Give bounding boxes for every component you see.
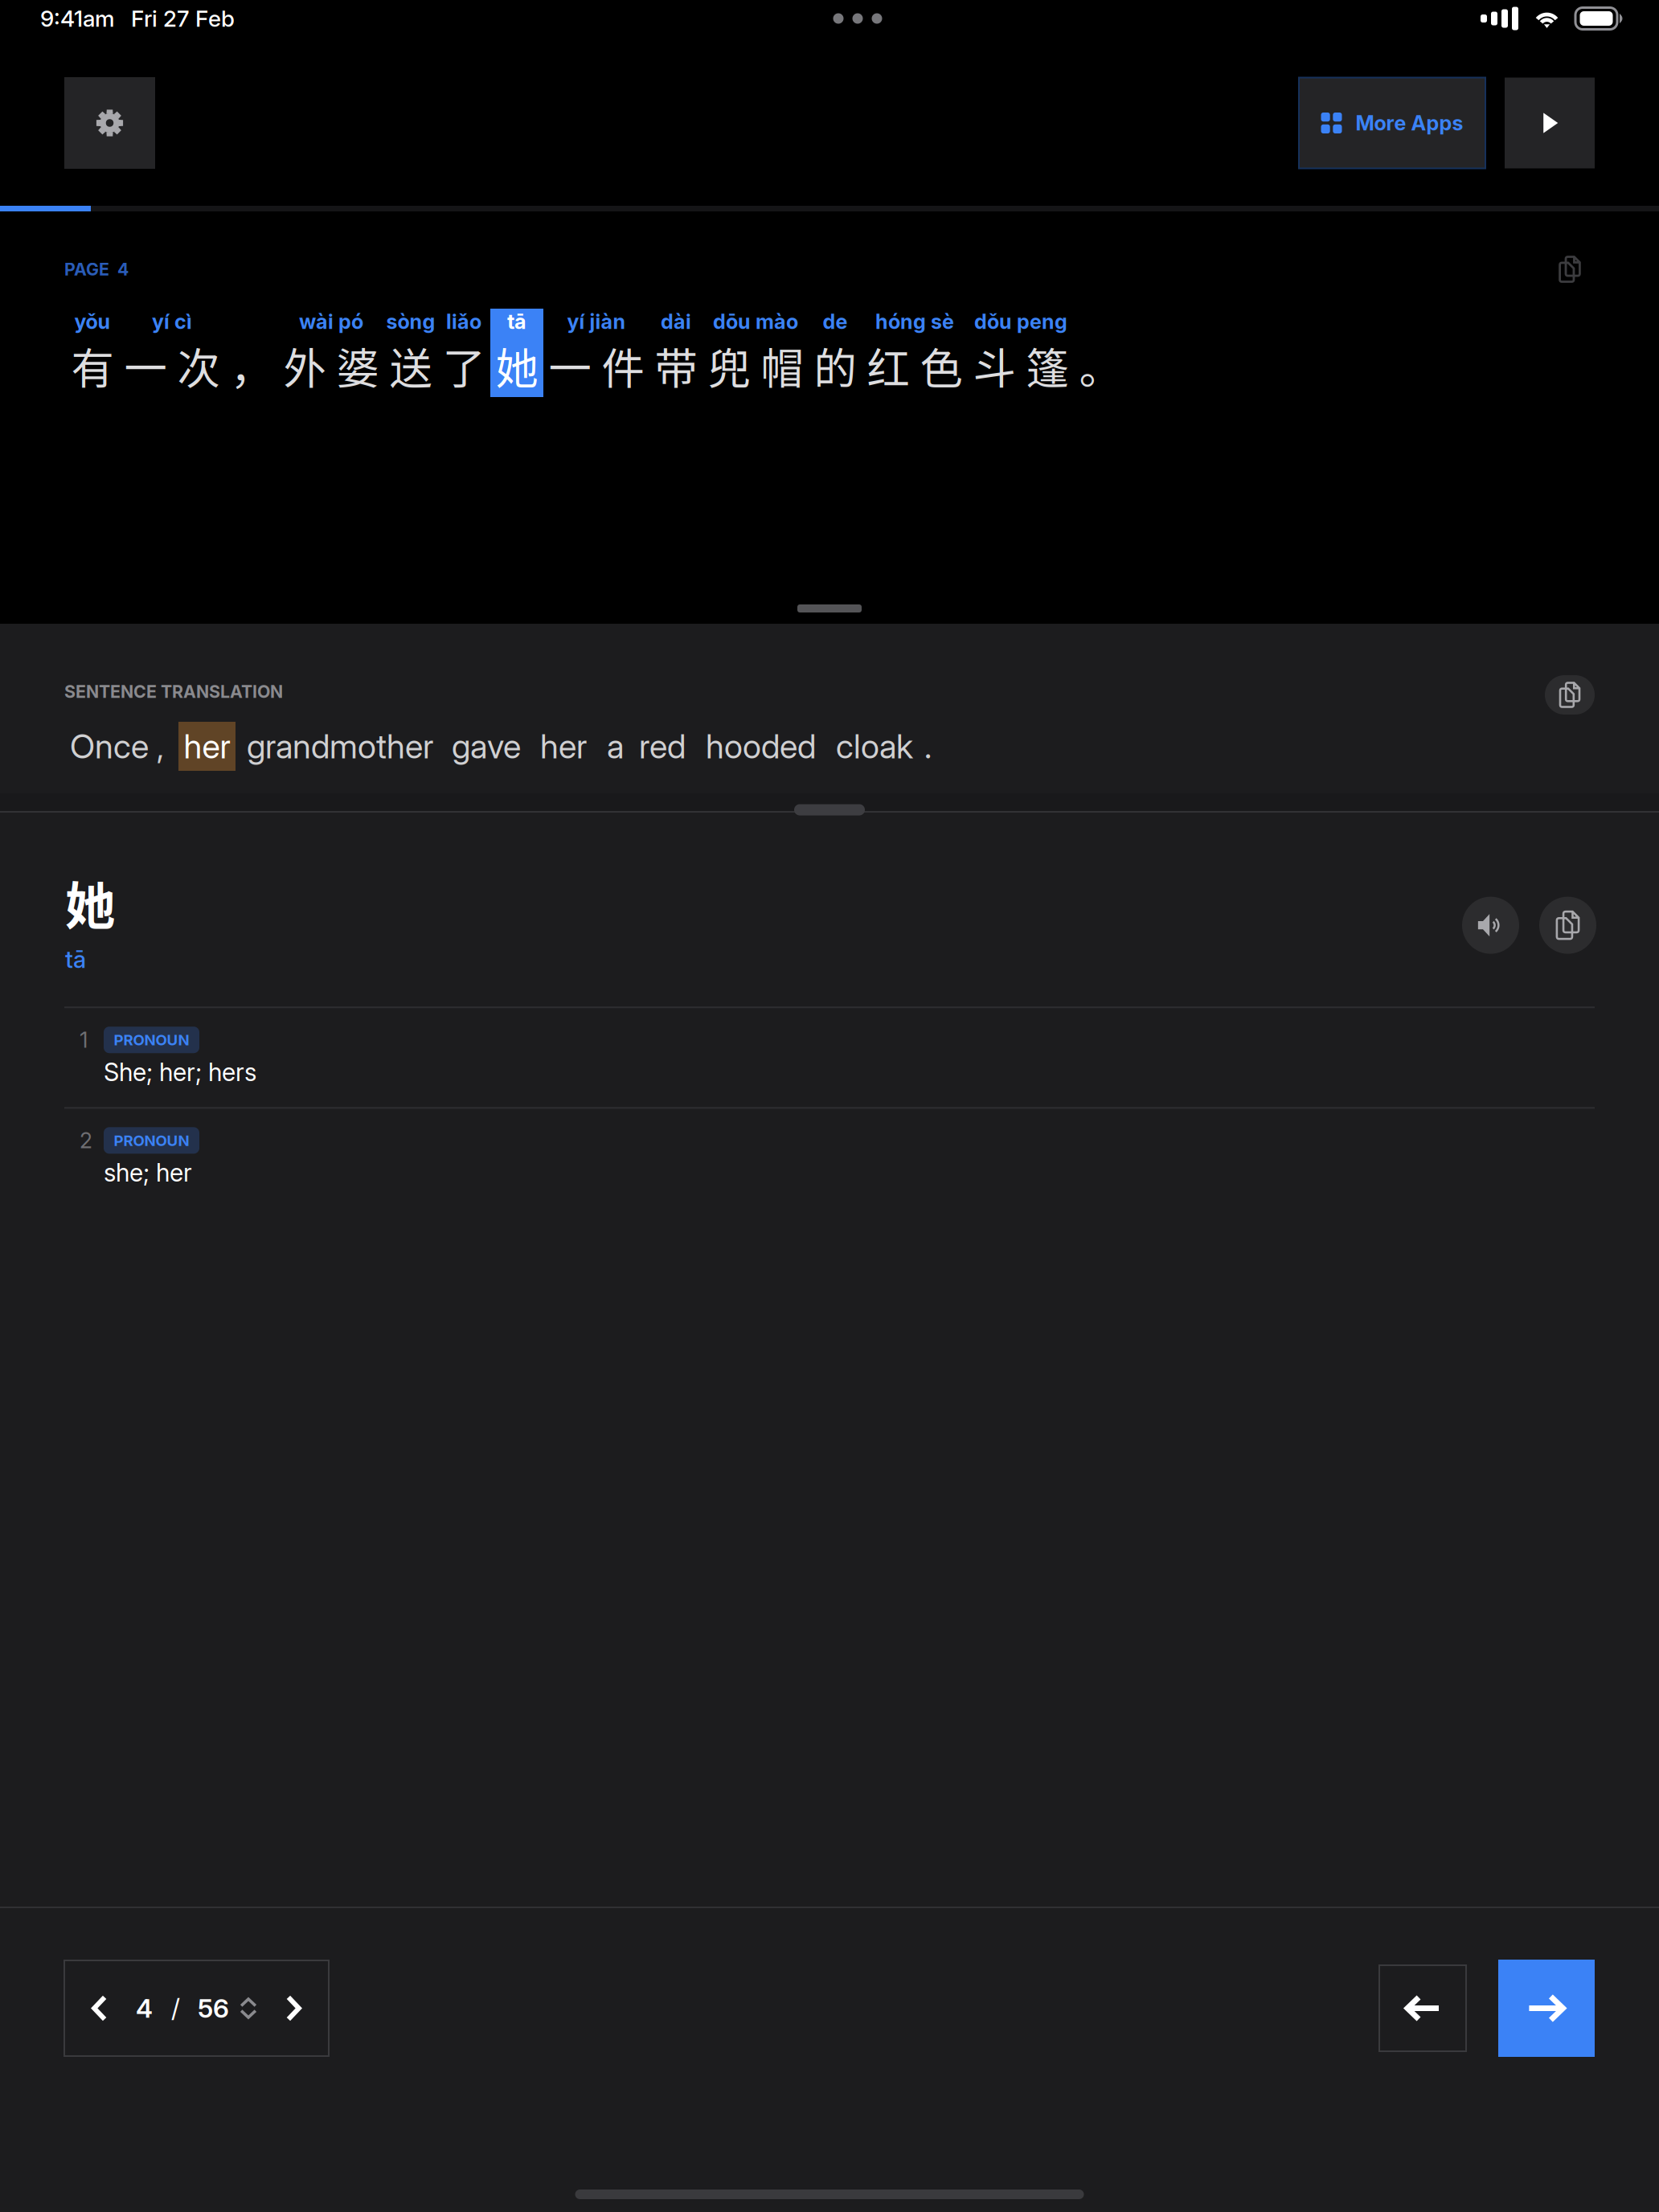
button[interactable]: Copy word (1539, 897, 1596, 954)
staticText: ， (230, 335, 273, 397)
button[interactable]: 4 (64, 1960, 329, 2056)
staticText: 2 (80, 1127, 92, 1153)
staticText: tā (65, 945, 86, 974)
button[interactable]: Previous (1379, 1965, 1466, 2051)
staticText: 色 (920, 335, 963, 397)
staticText: liǎo (446, 309, 481, 334)
staticText: she; her (104, 1158, 192, 1188)
staticText: Once (70, 726, 149, 766)
staticText: , (157, 726, 164, 766)
staticText: dōu mào (713, 309, 798, 334)
staticText: a (607, 726, 624, 766)
staticText: 4 (136, 1993, 153, 2024)
staticText: 她 (496, 335, 538, 397)
staticText: her (184, 726, 230, 766)
staticText: 红 (867, 335, 909, 397)
staticText: gave (452, 726, 521, 766)
staticText: dǒu peng (974, 309, 1067, 334)
staticText: 件 (602, 335, 644, 397)
staticText: 一 (124, 335, 167, 397)
staticText: 送 (389, 335, 432, 397)
staticText: 的 (814, 335, 856, 397)
staticText: 斗 (973, 335, 1016, 397)
staticText: 9:41am (40, 5, 115, 32)
staticText: yǒu (74, 309, 111, 334)
button[interactable]: Play (1505, 78, 1595, 168)
staticText: hooded (706, 726, 816, 766)
staticText: yí jiàn (567, 309, 626, 334)
staticText: wài pó (299, 309, 363, 334)
staticText: 外 (283, 335, 326, 397)
staticText: PAGE 4 (64, 259, 129, 280)
staticText: 次 (177, 335, 220, 397)
staticText: cloak (836, 726, 913, 766)
staticText: 婆 (336, 335, 379, 397)
staticText: 1 (80, 1027, 88, 1053)
staticText: PRONOUN (114, 1131, 189, 1149)
staticText: 篷 (1026, 335, 1069, 397)
staticText: PRONOUN (114, 1031, 189, 1049)
staticText: yí cì (152, 309, 192, 334)
staticText: sòng (386, 309, 435, 334)
staticText: hóng sè (875, 309, 954, 334)
staticText: . (924, 726, 932, 766)
button[interactable]: Copy sentence (1550, 247, 1590, 292)
staticText: 56 (198, 1993, 229, 2024)
staticText: 一 (549, 335, 591, 397)
staticText: red (639, 726, 686, 766)
staticText: 。 (1079, 335, 1122, 397)
staticText: grandmother (247, 726, 433, 766)
staticText: / (171, 1993, 180, 2024)
staticText: 兜 (708, 335, 750, 397)
staticText: tā (507, 309, 526, 334)
staticText: She; her; hers (104, 1057, 256, 1087)
button[interactable]: More Apps (1299, 78, 1485, 168)
button[interactable]: Settings (64, 77, 155, 169)
button[interactable]: Next (1498, 1960, 1595, 2057)
staticText: de (823, 309, 848, 334)
staticText: 帽 (761, 335, 803, 397)
button[interactable]: Pronounce (1462, 897, 1519, 954)
staticText: 她 (65, 866, 116, 939)
staticText: 了 (442, 335, 485, 397)
staticText: her (540, 726, 587, 766)
staticText: 有 (71, 335, 114, 397)
staticText: SENTENCE TRANSLATION (64, 681, 283, 702)
button[interactable]: Copy translation (1545, 669, 1595, 715)
staticText: More Apps (1356, 111, 1463, 135)
staticText: 带 (655, 335, 697, 397)
staticText: Fri 27 Feb (131, 5, 235, 32)
staticText: dài (661, 309, 691, 334)
